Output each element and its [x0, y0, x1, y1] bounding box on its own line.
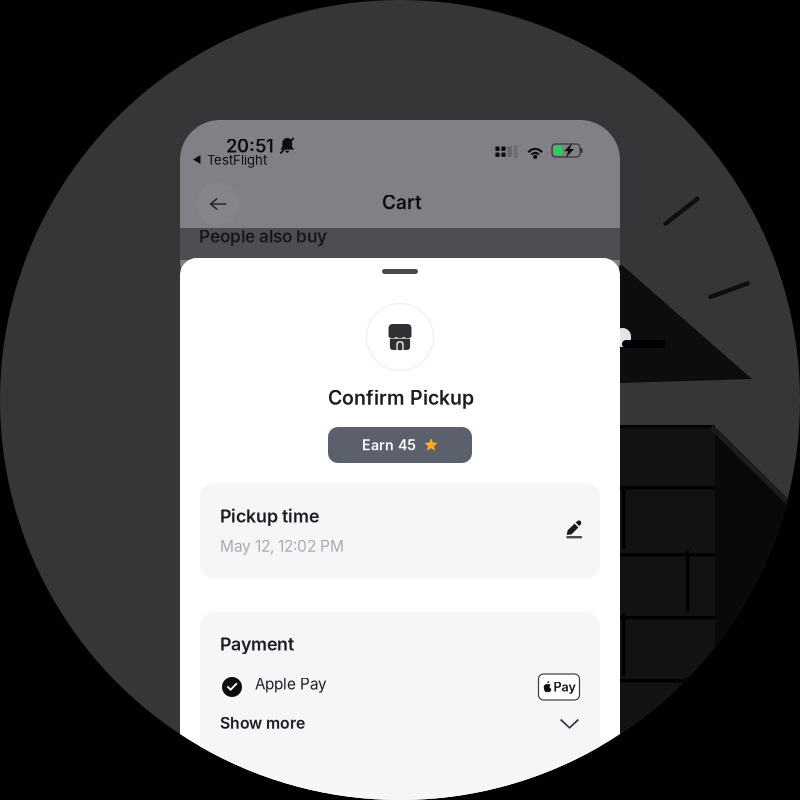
staticText: Pay	[553, 679, 575, 695]
button[interactable]: Pickup time	[200, 483, 600, 578]
staticText: Earn 45	[362, 436, 416, 453]
staticText: May 12, 12:02 PM	[220, 537, 344, 555]
button[interactable]: Show more	[220, 712, 580, 734]
button[interactable]: Back	[197, 183, 239, 225]
staticText: Apple Pay	[255, 675, 327, 693]
staticText: Confirm Pickup	[328, 386, 474, 410]
staticText: Pickup time	[220, 505, 319, 527]
staticText: Payment	[220, 633, 294, 655]
staticText: TestFlight	[207, 152, 267, 168]
staticText: Cart	[382, 191, 422, 214]
staticText: People also buy	[199, 226, 327, 247]
staticText: Show more	[220, 713, 305, 732]
staticText: 20:51	[226, 135, 274, 157]
button[interactable]: Earn 45	[328, 427, 472, 463]
button[interactable]: Apple Pay	[220, 672, 580, 702]
